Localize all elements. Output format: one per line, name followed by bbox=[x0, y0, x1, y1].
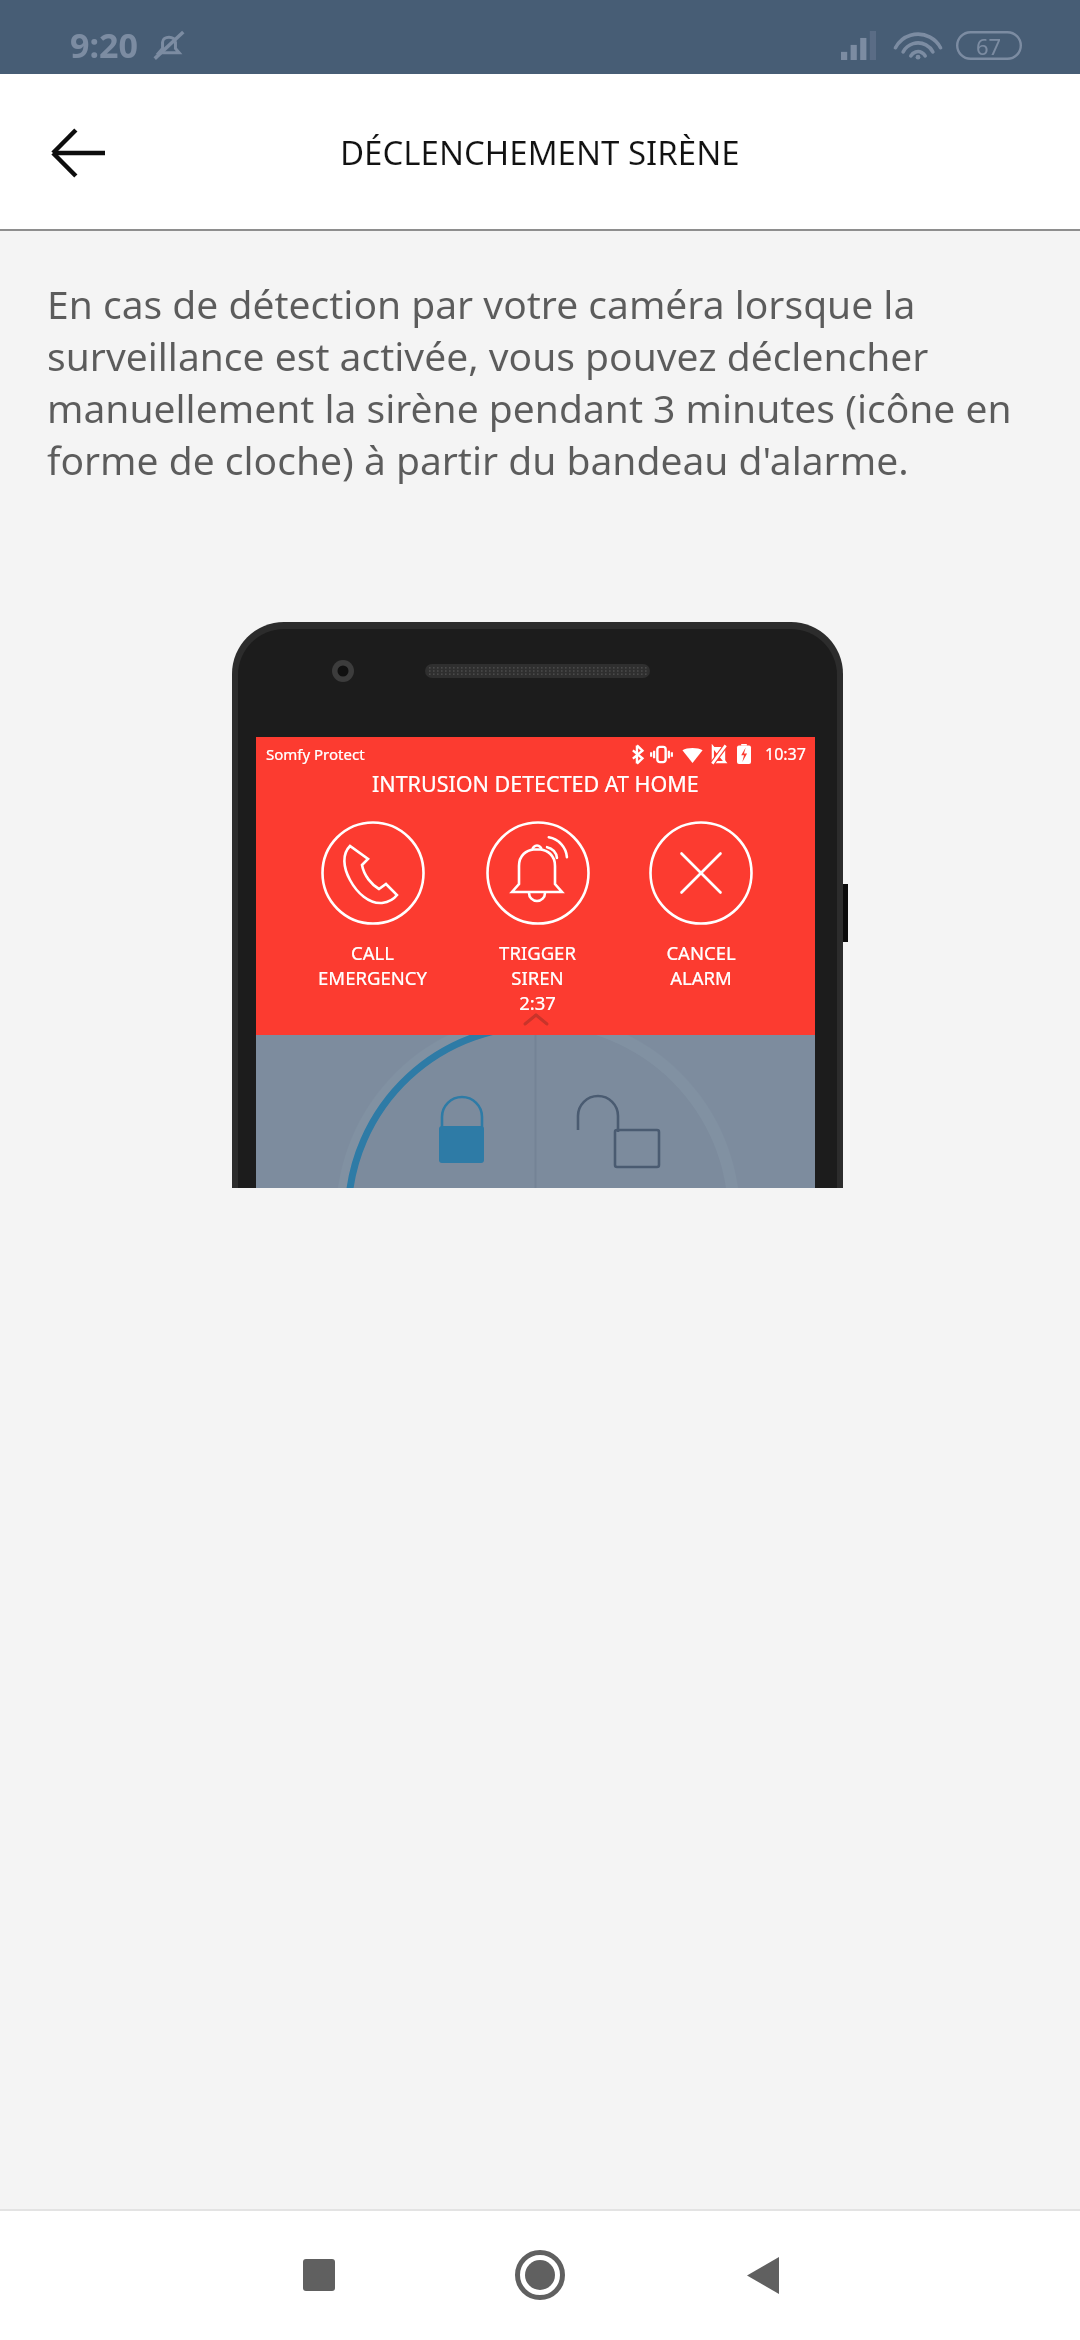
staticText: CALL bbox=[351, 940, 394, 965]
button[interactable]: CALL bbox=[290, 821, 455, 990]
staticText: TRIGGER bbox=[499, 940, 576, 965]
staticText: INTRUSION DETECTED AT HOME bbox=[372, 769, 699, 798]
staticText: SIREN bbox=[511, 965, 564, 990]
staticText: 10:37 bbox=[765, 743, 806, 765]
staticText: En cas de détection par votre caméra lor… bbox=[47, 277, 1022, 486]
staticText: 2:37 bbox=[519, 990, 556, 1015]
staticText: EMERGENCY bbox=[318, 965, 427, 990]
staticText: CANCEL bbox=[666, 940, 736, 965]
button[interactable]: TRIGGER bbox=[455, 821, 620, 1015]
staticText: 9:20 bbox=[70, 22, 138, 68]
button[interactable]: Back bbox=[698, 2225, 828, 2325]
staticText: 67 bbox=[976, 31, 1002, 60]
button[interactable]: Back bbox=[28, 103, 128, 203]
staticText: DÉCLENCHEMENT SIRÈNE bbox=[340, 130, 740, 175]
button[interactable]: Recent apps bbox=[254, 2225, 384, 2325]
button[interactable]: Home bbox=[475, 2225, 605, 2325]
staticText: Somfy Protect bbox=[266, 744, 365, 764]
staticText: ALARM bbox=[670, 965, 732, 990]
button[interactable]: CANCEL bbox=[618, 821, 783, 990]
